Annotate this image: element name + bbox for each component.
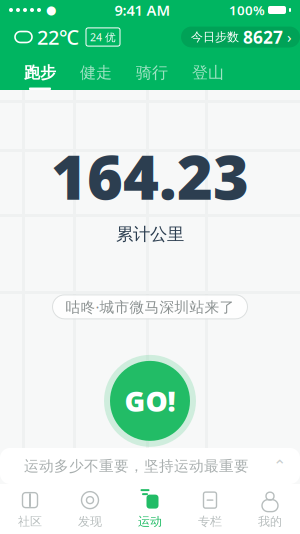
button[interactable]: 专栏 [180, 484, 240, 534]
button[interactable]: 运动多少不重要，坚持运动最重要 [0, 448, 300, 484]
staticText: ⌃ [273, 457, 286, 475]
staticText: 专栏 [198, 514, 222, 529]
staticText: › [287, 27, 292, 47]
button[interactable]: GO! [104, 355, 196, 447]
button[interactable]: 跑步 [12, 54, 68, 90]
staticText: 跑步 [24, 63, 56, 82]
staticText: 累计公里 [116, 224, 184, 245]
button[interactable]: 骑行 [124, 54, 180, 90]
button[interactable]: 发现 [60, 484, 120, 534]
button[interactable]: 登山 [180, 54, 236, 90]
staticText: 100% [229, 1, 265, 19]
staticText: 健走 [80, 63, 112, 82]
staticText: 咕咚·城市微马深圳站来了 [65, 297, 234, 317]
staticText: 我的 [258, 514, 282, 529]
staticText: ● [46, 3, 56, 17]
staticText: GO! [124, 382, 175, 419]
staticText: 22℃ [37, 24, 79, 50]
staticText: 登山 [192, 63, 224, 82]
button[interactable]: 今日步数 [181, 26, 300, 47]
staticText: 发现 [78, 514, 102, 529]
button[interactable]: 社区 [0, 484, 60, 534]
button[interactable]: 运动 [120, 484, 180, 534]
staticText: 运动多少不重要，坚持运动最重要 [24, 457, 249, 475]
staticText: 24 优 [90, 30, 116, 44]
staticText: 8627 [243, 25, 283, 48]
staticText: 164.23 [51, 135, 249, 216]
staticText: 骑行 [136, 63, 168, 82]
button[interactable]: 我的 [240, 484, 300, 534]
button[interactable]: 健走 [68, 54, 124, 90]
staticText: 社区 [18, 514, 42, 529]
staticText: 9:41 AM [114, 0, 170, 20]
staticText: 运动 [138, 514, 162, 529]
staticText: 今日步数 [191, 30, 239, 44]
